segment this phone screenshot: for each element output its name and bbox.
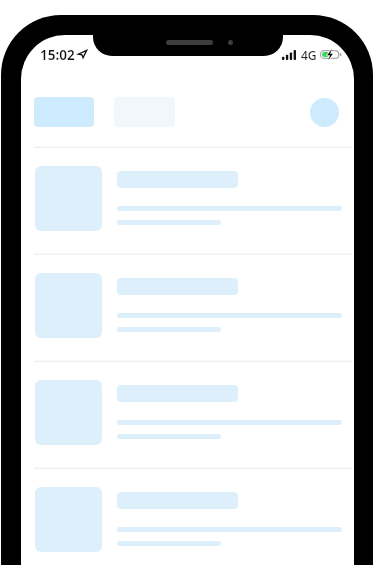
other: Location bbox=[78, 50, 87, 58]
button[interactable] bbox=[21, 467, 354, 565]
staticText: 4G bbox=[301, 47, 317, 63]
button[interactable] bbox=[34, 97, 94, 127]
button[interactable]: Profile bbox=[310, 98, 339, 127]
button[interactable] bbox=[21, 146, 354, 253]
staticText: 15:02 bbox=[40, 46, 75, 64]
button[interactable] bbox=[21, 360, 354, 467]
button[interactable] bbox=[21, 253, 354, 360]
